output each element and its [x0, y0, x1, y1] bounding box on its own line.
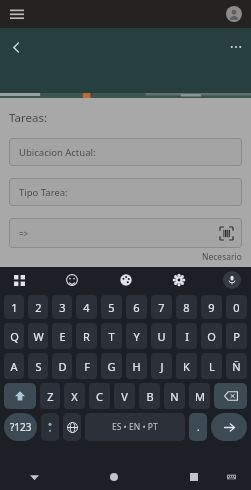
staticText: B: [146, 389, 154, 404]
button[interactable]: Recent apps: [183, 466, 205, 488]
staticText: Tipo Tarea:: [19, 186, 68, 199]
button[interactable]: Back: [5, 36, 27, 58]
staticText: O: [207, 329, 216, 344]
staticText: 6: [133, 300, 140, 315]
button[interactable]: 1: [4, 295, 24, 319]
staticText: ?123: [10, 420, 32, 434]
button[interactable]: Z: [40, 383, 60, 409]
staticText: Q: [10, 329, 19, 344]
staticText: 3: [59, 300, 66, 315]
staticText: Z: [47, 389, 54, 404]
staticText: A: [10, 359, 18, 374]
button[interactable]: R: [76, 323, 97, 349]
button[interactable]: Ñ: [226, 353, 247, 379]
button[interactable]: N: [164, 383, 185, 409]
button[interactable]: Y: [126, 323, 147, 349]
button[interactable]: 7: [151, 295, 172, 319]
button[interactable]: P: [226, 323, 247, 349]
button[interactable]: E: [52, 323, 72, 349]
button[interactable]: 6: [126, 295, 147, 319]
button[interactable]: 9: [201, 295, 222, 319]
button[interactable]: =>: [9, 218, 242, 248]
button[interactable]: Enter: [211, 413, 247, 441]
button[interactable]: 3: [52, 295, 72, 319]
button[interactable]: Backspace: [214, 383, 247, 409]
button[interactable]: ?123: [4, 413, 37, 441]
button[interactable]: 0: [226, 295, 247, 319]
button[interactable]: Keyboard layouts: [8, 269, 30, 291]
button[interactable]: S: [28, 353, 48, 379]
button[interactable]: K: [176, 353, 197, 379]
button[interactable]: 5: [101, 295, 122, 319]
button[interactable]: Settings: [168, 269, 190, 291]
button[interactable]: Comma: [41, 413, 59, 441]
staticText: 5: [108, 300, 115, 315]
button[interactable]: Back: [23, 466, 45, 488]
button[interactable]: Home: [103, 466, 125, 488]
button[interactable]: Q: [4, 323, 24, 349]
button[interactable]: More options: [225, 36, 247, 58]
button[interactable]: Change language: [63, 413, 81, 441]
button[interactable]: O: [201, 323, 222, 349]
staticText: C: [96, 389, 103, 404]
staticText: K: [183, 359, 190, 374]
button[interactable]: Ubicacion Actual:: [9, 138, 242, 166]
button[interactable]: G: [101, 353, 122, 379]
button[interactable]: Tipo Tarea:: [9, 178, 242, 206]
button[interactable]: 8: [176, 295, 197, 319]
staticText: 1: [11, 300, 18, 315]
staticText: D: [58, 359, 67, 374]
button[interactable]: .: [189, 413, 207, 441]
staticText: G: [107, 359, 116, 374]
staticText: L: [209, 359, 215, 374]
button[interactable]: T: [101, 323, 122, 349]
button[interactable]: 4: [76, 295, 97, 319]
button[interactable]: Account: [225, 5, 243, 23]
staticText: H: [132, 359, 141, 374]
staticText: M: [195, 389, 205, 404]
button[interactable]: C: [89, 383, 110, 409]
staticText: T: [108, 329, 115, 344]
staticText: F: [84, 359, 90, 374]
staticText: 8: [183, 300, 190, 315]
button[interactable]: F: [76, 353, 97, 379]
staticText: P: [233, 329, 240, 344]
button[interactable]: 2: [28, 295, 48, 319]
button[interactable]: V: [114, 383, 135, 409]
button[interactable]: Shift: [4, 383, 36, 409]
button[interactable]: M: [189, 383, 210, 409]
button[interactable]: B: [139, 383, 160, 409]
button[interactable]: H: [126, 353, 147, 379]
staticText: V: [121, 389, 128, 404]
staticText: ES • EN • PT: [112, 421, 158, 433]
staticText: I: [185, 329, 189, 344]
staticText: 2: [35, 300, 42, 315]
staticText: =>: [19, 228, 29, 239]
staticText: Tareas:: [9, 110, 47, 126]
staticText: Ubicacion Actual:: [19, 146, 96, 159]
staticText: E: [59, 329, 66, 344]
staticText: 4: [83, 300, 90, 315]
staticText: X: [71, 389, 78, 404]
button[interactable]: Hide keyboard: [220, 466, 242, 488]
button[interactable]: A: [4, 353, 24, 379]
staticText: U: [157, 329, 166, 344]
staticText: Ñ: [232, 359, 241, 374]
button[interactable]: Scan barcode: [217, 224, 235, 242]
button[interactable]: U: [151, 323, 172, 349]
button[interactable]: L: [201, 353, 222, 379]
button[interactable]: Menu: [6, 3, 28, 25]
button[interactable]: J: [151, 353, 172, 379]
button[interactable]: W: [28, 323, 48, 349]
staticText: R: [83, 329, 90, 344]
button[interactable]: X: [64, 383, 85, 409]
staticText: Necesario: [202, 251, 242, 263]
button[interactable]: D: [52, 353, 72, 379]
staticText: S: [35, 359, 42, 374]
button[interactable]: I: [176, 323, 197, 349]
button[interactable]: Themes: [115, 269, 137, 291]
button[interactable]: Voice input: [221, 269, 243, 291]
button[interactable]: Emoji: [61, 269, 83, 291]
staticText: W: [33, 329, 44, 344]
button[interactable]: ES • EN • PT: [85, 413, 185, 441]
